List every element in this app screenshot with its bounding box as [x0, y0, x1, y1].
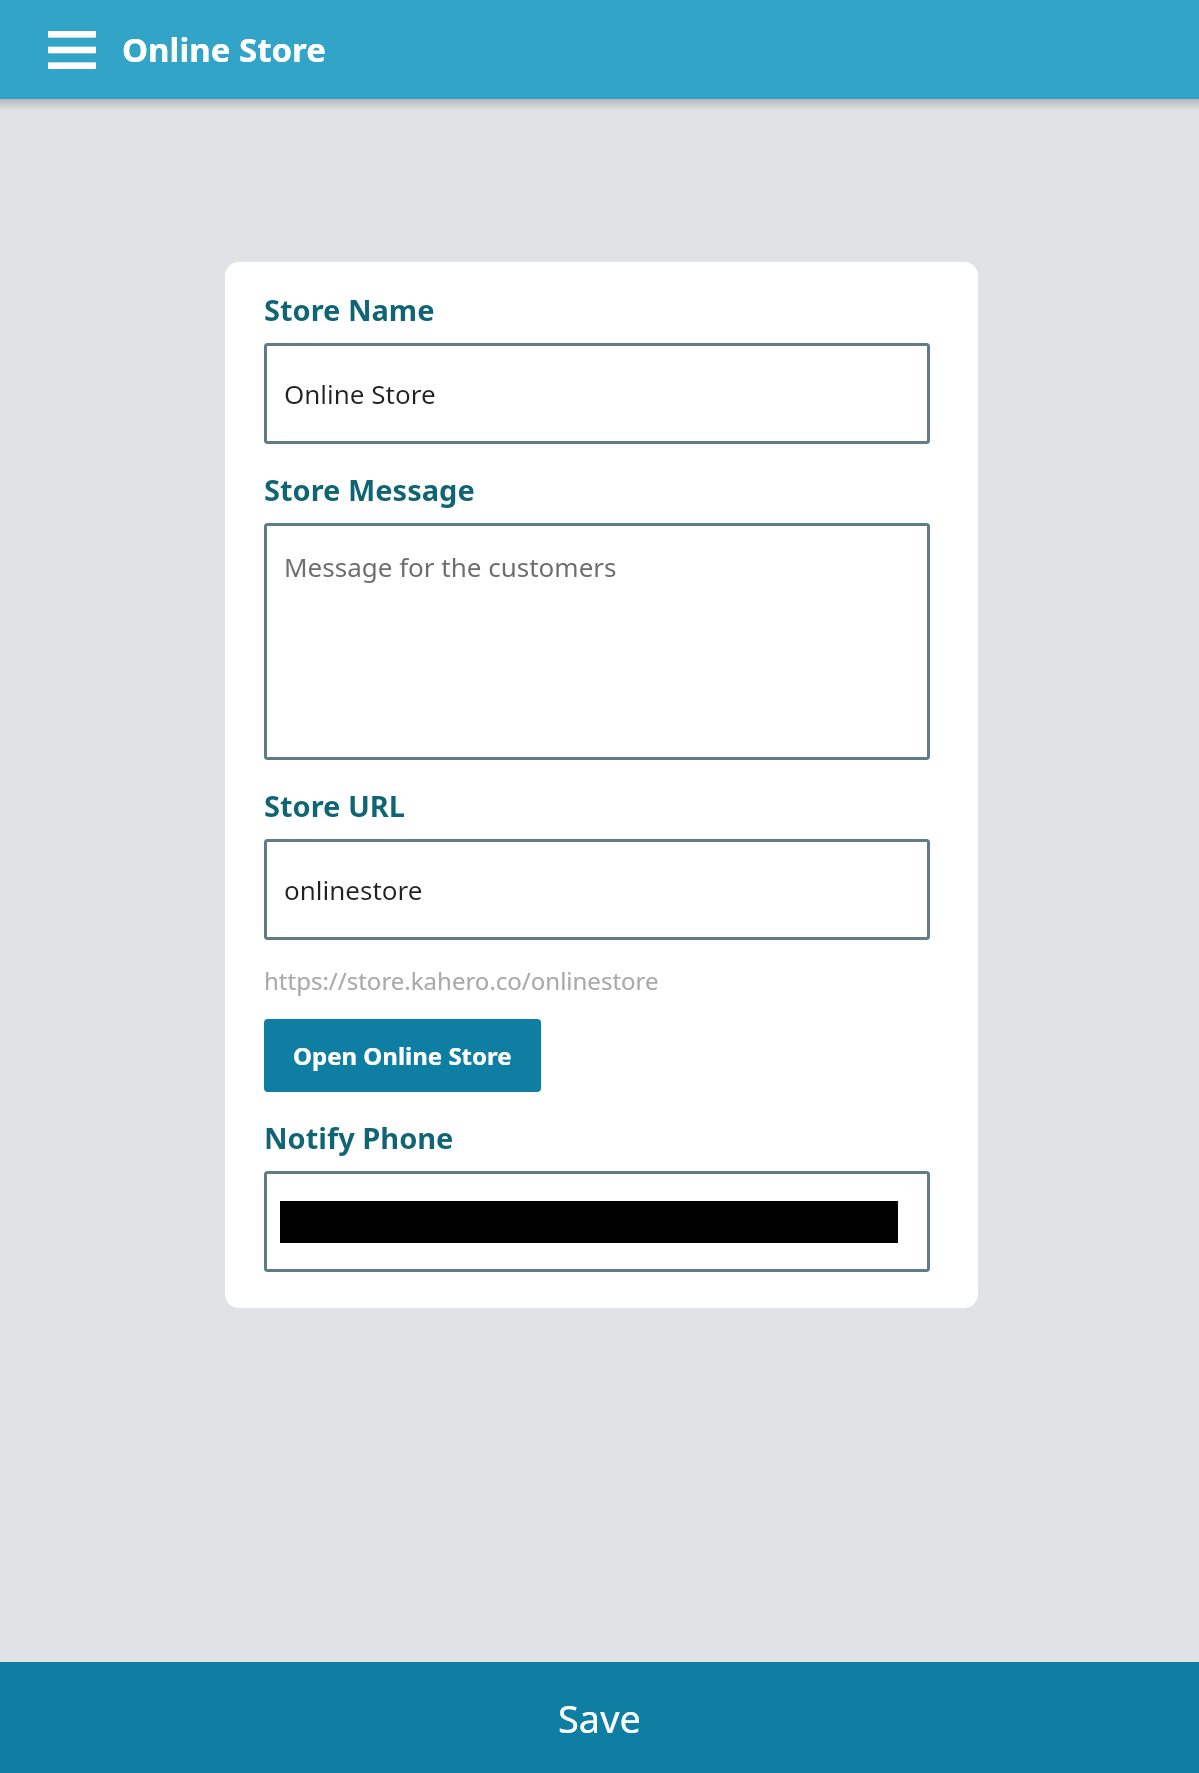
button[interactable]: Open navigation menu [40, 18, 104, 82]
staticText: Store URL [264, 786, 406, 825]
staticText: Notify Phone [264, 1118, 454, 1157]
button[interactable]: Message for the customers [264, 523, 930, 760]
button[interactable]: Online Store [264, 343, 930, 444]
staticText: Store Name [264, 290, 435, 329]
staticText: Save [558, 1692, 641, 1744]
staticText: Open Online Store [293, 1039, 512, 1072]
staticText: Online Store [122, 27, 326, 72]
staticText: https://store.kahero.co/onlinestore [264, 964, 659, 997]
staticText: Online Store [284, 376, 436, 411]
button[interactable]: Open Online Store [264, 1019, 541, 1092]
staticText: Message for the customers [284, 549, 617, 584]
button[interactable]: onlinestore [264, 839, 930, 940]
staticText: Store Message [264, 470, 475, 509]
staticText: onlinestore [284, 872, 423, 907]
button[interactable] [264, 1171, 930, 1272]
button[interactable]: Save [0, 1662, 1199, 1773]
